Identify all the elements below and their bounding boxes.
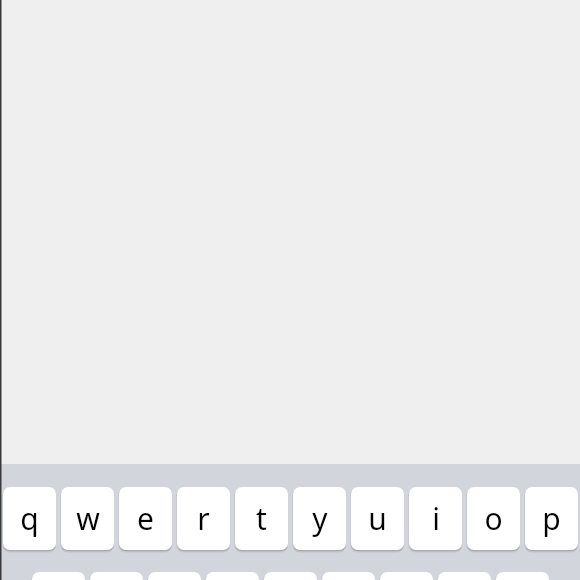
button[interactable]: q bbox=[3, 487, 56, 550]
button[interactable]: r bbox=[177, 487, 230, 550]
button[interactable]: t bbox=[235, 487, 288, 550]
staticText: q bbox=[20, 498, 39, 539]
button[interactable]: s bbox=[90, 572, 143, 580]
staticText: u bbox=[368, 498, 387, 539]
staticText: r bbox=[197, 498, 210, 539]
button[interactable]: a bbox=[32, 572, 85, 580]
button[interactable]: l bbox=[496, 572, 549, 580]
button[interactable]: f bbox=[206, 572, 259, 580]
staticText: i bbox=[432, 498, 440, 539]
button[interactable]: y bbox=[293, 487, 346, 550]
button[interactable]: o bbox=[467, 487, 520, 550]
staticText: e bbox=[137, 498, 154, 539]
button[interactable]: p bbox=[525, 487, 578, 550]
button[interactable]: g bbox=[264, 572, 317, 580]
staticText: w bbox=[76, 498, 100, 539]
button[interactable]: i bbox=[409, 487, 462, 550]
button[interactable]: j bbox=[380, 572, 433, 580]
button[interactable]: e bbox=[119, 487, 172, 550]
button[interactable]: w bbox=[61, 487, 114, 550]
button[interactable]: d bbox=[148, 572, 201, 580]
staticText: o bbox=[484, 498, 503, 539]
button[interactable]: h bbox=[322, 572, 375, 580]
staticText: p bbox=[542, 498, 561, 539]
button[interactable]: k bbox=[438, 572, 491, 580]
staticText: y bbox=[312, 498, 328, 539]
button[interactable]: u bbox=[351, 487, 404, 550]
staticText: t bbox=[256, 498, 267, 539]
